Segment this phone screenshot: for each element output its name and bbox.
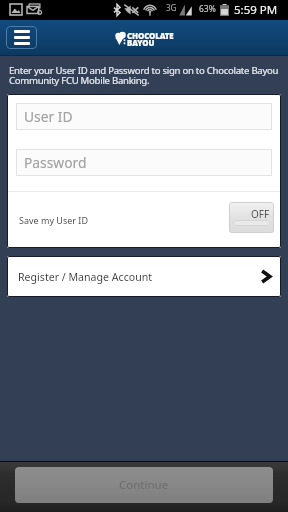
button[interactable]: Password (16, 149, 272, 176)
staticText: Password (24, 153, 87, 172)
staticText: CHOCOLATE (127, 31, 174, 42)
staticText: OFF (251, 207, 270, 221)
button[interactable]: Continue (15, 467, 273, 503)
staticText: 3G (166, 2, 177, 13)
staticText: BAYOU (127, 38, 155, 49)
staticText: Save my User ID (19, 214, 88, 226)
button[interactable]: Register / Manage Account (7, 256, 281, 297)
staticText: Register / Manage Account (18, 270, 153, 284)
button[interactable]: User ID (16, 103, 272, 130)
button[interactable]: Open navigation menu (6, 26, 37, 49)
staticText: Enter your User ID and Password to sign … (9, 64, 287, 87)
button[interactable]: Save my User ID switch, off (229, 202, 274, 233)
staticText: 63% (199, 3, 216, 15)
staticText: User ID (24, 107, 73, 126)
staticText: 5:59 PM (234, 2, 278, 18)
staticText: Continue (119, 477, 169, 493)
